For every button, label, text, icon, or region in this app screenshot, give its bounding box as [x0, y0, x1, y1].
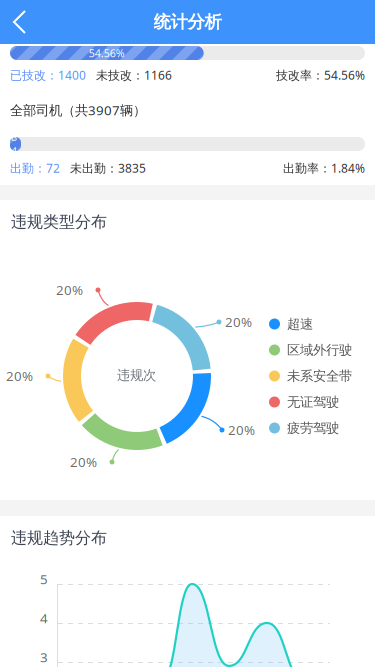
- staticText: 20%: [225, 313, 252, 331]
- staticText: 3: [40, 648, 48, 666]
- staticText: 54.56%: [89, 46, 125, 60]
- staticText: 未系安全带: [287, 368, 352, 384]
- staticText: 疲劳驾驶: [287, 420, 339, 436]
- staticText: 已技改：1400: [10, 67, 86, 83]
- staticText: 1.84%: [11, 116, 20, 172]
- staticText: 技改率：54.56%: [276, 67, 365, 83]
- staticText: 全部司机（共3907辆）: [10, 101, 146, 119]
- staticText: 出勤率：1.84%: [283, 160, 365, 176]
- staticText: 统计分析: [153, 11, 221, 33]
- staticText: 20%: [56, 281, 83, 299]
- staticText: 20%: [70, 453, 97, 471]
- staticText: 违规次: [117, 367, 156, 383]
- staticText: 4: [40, 609, 48, 627]
- staticText: 出勤：72: [10, 160, 60, 176]
- staticText: 20%: [228, 421, 255, 439]
- button[interactable]: 返回: [5, 5, 39, 39]
- staticText: 未出勤：3835: [70, 160, 146, 176]
- staticText: 违规类型分布: [11, 212, 107, 232]
- staticText: 5: [40, 570, 48, 588]
- staticText: 未技改：1166: [96, 67, 172, 83]
- staticText: 超速: [287, 316, 313, 332]
- staticText: 违规趋势分布: [11, 528, 107, 548]
- staticText: 20%: [6, 367, 33, 385]
- staticText: 区域外行驶: [287, 342, 352, 358]
- staticText: 无证驾驶: [287, 394, 339, 410]
